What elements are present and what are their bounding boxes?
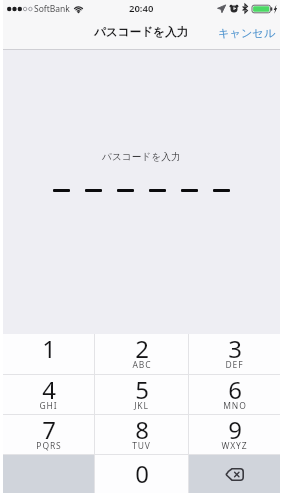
staticText: 4 <box>42 373 56 406</box>
staticText: 0 <box>135 457 149 490</box>
staticText: WXYZ <box>221 440 248 452</box>
staticText: 2 <box>135 332 149 365</box>
staticText: 5 <box>135 373 149 406</box>
staticText: DEF <box>225 359 244 371</box>
staticText: パスコードを入力 <box>94 25 189 40</box>
staticText: 1 <box>42 332 56 365</box>
staticText: TUV <box>132 440 151 452</box>
button[interactable]: 1 <box>3 334 94 374</box>
button[interactable]: 8 <box>95 415 188 454</box>
staticText: 7 <box>42 413 56 446</box>
staticText: キャンセル <box>218 26 276 40</box>
button[interactable]: 5 <box>95 375 188 414</box>
button[interactable]: Delete <box>189 455 280 493</box>
button[interactable]: 0 <box>95 455 188 493</box>
staticText: ABC <box>132 359 152 371</box>
staticText: 20:40 <box>129 2 154 15</box>
staticText: 3 <box>228 332 242 365</box>
staticText: JKL <box>134 400 149 412</box>
button[interactable]: 9 <box>189 415 280 454</box>
staticText: 9 <box>228 413 242 446</box>
staticText: 6 <box>228 373 242 406</box>
staticText: パスコードを入力 <box>102 151 181 163</box>
staticText: 8 <box>135 413 149 446</box>
button[interactable]: 4 <box>3 375 94 414</box>
button[interactable]: キャンセル <box>212 20 280 46</box>
staticText: GHI <box>39 400 58 412</box>
staticText: PQRS <box>36 440 62 452</box>
staticText: SoftBank <box>34 3 70 15</box>
button[interactable]: 7 <box>3 415 94 454</box>
staticText: MNO <box>223 400 247 412</box>
button[interactable]: 2 <box>95 334 188 374</box>
button[interactable]: 3 <box>189 334 280 374</box>
button[interactable]: 6 <box>189 375 280 414</box>
